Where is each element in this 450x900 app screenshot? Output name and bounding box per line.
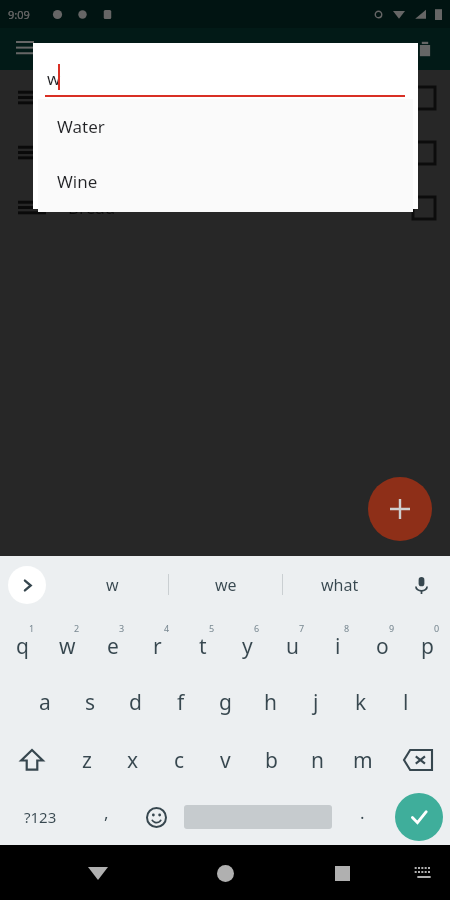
- staticText: m: [353, 746, 373, 775]
- staticText: 6: [254, 622, 260, 634]
- button[interactable]: 0: [405, 613, 450, 673]
- button[interactable]: 5: [180, 613, 225, 673]
- button[interactable]: 8: [315, 613, 360, 673]
- staticText: o: [376, 632, 389, 661]
- staticText: k: [355, 688, 367, 717]
- staticText: 7: [299, 622, 305, 634]
- staticText: h: [264, 688, 277, 717]
- staticText: g: [219, 688, 232, 717]
- staticText: l: [403, 688, 409, 717]
- button[interactable]: j: [293, 673, 338, 731]
- staticText: f: [177, 688, 185, 717]
- staticText: 4: [164, 622, 170, 634]
- button[interactable]: Switch keyboard: [406, 855, 442, 891]
- button[interactable]: Wine: [38, 154, 413, 209]
- staticText: Bread: [68, 196, 116, 219]
- staticText: Water: [57, 115, 105, 138]
- button[interactable]: g: [203, 673, 248, 731]
- button[interactable]: Shift: [0, 731, 64, 789]
- staticText: 1: [29, 622, 35, 634]
- staticText: w: [47, 67, 61, 90]
- staticText: we: [215, 574, 237, 596]
- staticText: Milk: [68, 86, 102, 109]
- button[interactable]: 7: [270, 613, 315, 673]
- staticText: ?123: [24, 807, 57, 827]
- staticText: 5: [209, 622, 215, 634]
- staticText: Wine: [57, 170, 98, 193]
- staticText: 9: [389, 622, 395, 634]
- button[interactable]: Emoji: [132, 789, 180, 845]
- staticText: t: [199, 632, 207, 661]
- button[interactable]: Recent apps: [320, 851, 364, 895]
- staticText: r: [153, 632, 162, 661]
- button[interactable]: Bread: [0, 180, 450, 235]
- staticText: j: [313, 688, 319, 717]
- button[interactable]: Milk: [0, 70, 450, 125]
- button[interactable]: d: [113, 673, 158, 731]
- staticText: e: [107, 632, 119, 661]
- staticText: u: [286, 632, 299, 661]
- staticText: y: [242, 632, 253, 661]
- button[interactable]: Water: [38, 99, 413, 154]
- staticText: 9:09: [8, 7, 30, 22]
- button[interactable]: Home: [203, 851, 247, 895]
- button[interactable]: n: [294, 731, 340, 789]
- staticText: .: [360, 801, 365, 824]
- button[interactable]: c: [156, 731, 202, 789]
- staticText: x: [127, 746, 139, 775]
- button[interactable]: ,: [80, 789, 132, 845]
- staticText: p: [421, 632, 434, 661]
- staticText: ,: [104, 801, 109, 824]
- button[interactable]: 2: [45, 613, 90, 673]
- button[interactable]: 1: [0, 613, 45, 673]
- button[interactable]: Back: [76, 851, 120, 895]
- staticText: z: [82, 746, 92, 775]
- button[interactable]: More suggestions: [8, 566, 46, 604]
- staticText: v: [220, 746, 231, 775]
- staticText: i: [335, 632, 341, 661]
- button[interactable]: f: [158, 673, 203, 731]
- button[interactable]: Backspace: [386, 731, 450, 789]
- button[interactable]: v: [202, 731, 248, 789]
- staticText: 8: [344, 622, 350, 634]
- button[interactable]: .: [336, 789, 388, 845]
- button[interactable]: b: [248, 731, 294, 789]
- staticText: what: [321, 574, 359, 596]
- button[interactable]: x: [110, 731, 156, 789]
- button[interactable]: Delete: [410, 34, 440, 64]
- button[interactable]: m: [340, 731, 386, 789]
- staticText: 3: [119, 622, 125, 634]
- button[interactable]: Add item: [368, 477, 432, 541]
- button[interactable]: we: [169, 556, 282, 613]
- staticText: w: [59, 632, 76, 661]
- button[interactable]: w: [56, 556, 168, 613]
- staticText: s: [85, 688, 96, 717]
- button[interactable]: z: [64, 731, 110, 789]
- button[interactable]: Open navigation menu: [10, 34, 40, 64]
- staticText: c: [174, 746, 185, 775]
- button[interactable]: 4: [135, 613, 180, 673]
- button[interactable]: Done: [395, 793, 443, 841]
- button[interactable]: h: [248, 673, 293, 731]
- button[interactable]: l: [383, 673, 428, 731]
- button[interactable]: what: [283, 556, 396, 613]
- button[interactable]: 3: [90, 613, 135, 673]
- staticText: a: [39, 688, 51, 717]
- button[interactable]: ?123: [0, 789, 80, 845]
- button[interactable]: Eggs: [0, 125, 450, 180]
- button[interactable]: s: [68, 673, 113, 731]
- button[interactable]: 9: [360, 613, 405, 673]
- button[interactable]: Voice input: [404, 568, 438, 602]
- staticText: 0: [434, 622, 440, 634]
- staticText: d: [129, 688, 142, 717]
- button[interactable]: 6: [225, 613, 270, 673]
- button[interactable]: a: [22, 673, 68, 731]
- staticText: q: [16, 632, 29, 661]
- staticText: w: [106, 574, 119, 596]
- staticText: b: [265, 746, 278, 775]
- staticText: 2: [74, 622, 80, 634]
- button[interactable]: k: [338, 673, 383, 731]
- staticText: n: [311, 746, 324, 775]
